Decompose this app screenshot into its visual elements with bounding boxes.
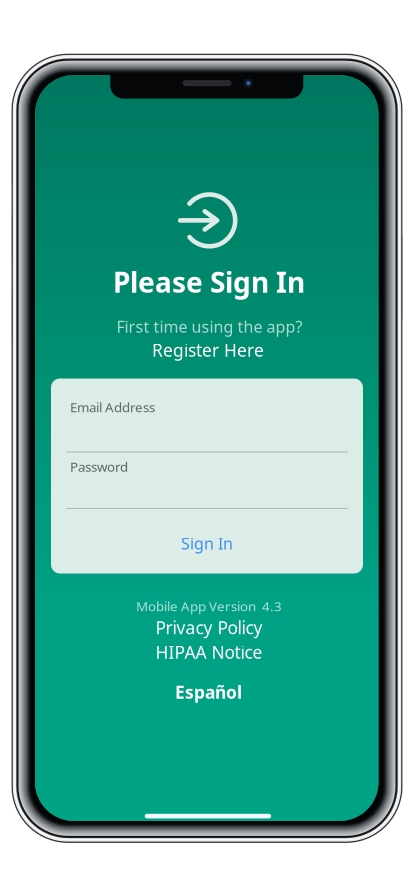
staticText: Español [175, 680, 242, 703]
staticText: HIPAA Notice [155, 640, 262, 663]
staticText: Password [70, 458, 128, 475]
staticText: Sign In [181, 533, 233, 554]
staticText: Register Here [152, 338, 264, 361]
button[interactable]: Email Address [51, 378, 363, 451]
staticText: Email Address [70, 398, 155, 416]
button[interactable]: Password [51, 451, 363, 508]
button[interactable]: Register Here [143, 338, 273, 362]
staticText: Please Sign In [113, 263, 305, 301]
button[interactable]: Privacy Policy [145, 615, 273, 639]
button[interactable]: HIPAA Notice [147, 640, 271, 664]
staticText: Privacy Policy [155, 616, 262, 639]
staticText: Mobile App Version 4.3 [136, 597, 282, 615]
button[interactable]: Español [163, 679, 253, 705]
staticText: First time using the app? [116, 316, 302, 337]
button[interactable]: Sign In [51, 511, 363, 576]
